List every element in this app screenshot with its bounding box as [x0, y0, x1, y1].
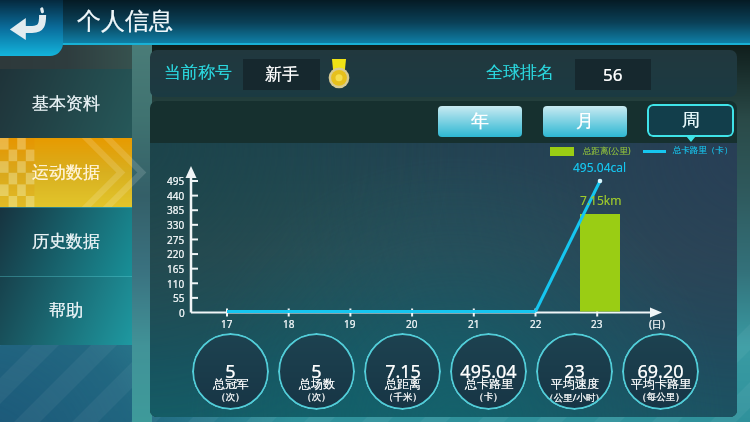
button[interactable]: 69.20 — [622, 333, 699, 410]
staticText: 7.15 — [385, 359, 421, 384]
button[interactable]: 495.04 — [450, 333, 527, 410]
staticText: 330 — [167, 218, 185, 232]
staticText: （次） — [302, 391, 331, 403]
staticText: 总距离 — [385, 376, 421, 391]
button[interactable]: Back — [0, 0, 63, 56]
staticText: 基本资料 — [32, 93, 100, 114]
staticText: 440 — [167, 189, 185, 203]
staticText: 20 — [406, 317, 418, 331]
staticText: 月 — [576, 110, 594, 133]
staticText: 18 — [283, 317, 295, 331]
button[interactable]: 运动数据 — [0, 138, 132, 207]
staticText: 个人信息 — [77, 6, 173, 36]
staticText: 69.20 — [637, 359, 684, 384]
button[interactable]: 5 — [278, 333, 355, 410]
staticText: 全球排名 — [486, 62, 554, 83]
staticText: 495.04 — [460, 359, 517, 384]
button[interactable]: 7.15 — [364, 333, 441, 410]
staticText: 495.04cal — [573, 159, 627, 175]
staticText: 总距离(公里) — [583, 145, 631, 157]
staticText: 运动数据 — [32, 162, 100, 183]
staticText: 56 — [603, 63, 623, 86]
button[interactable]: 5 — [192, 333, 269, 410]
staticText: 110 — [167, 277, 185, 291]
staticText: （公里/小时） — [544, 391, 605, 404]
button[interactable]: 周 — [647, 104, 734, 137]
staticText: 275 — [167, 233, 185, 247]
staticText: 5 — [225, 359, 236, 384]
staticText: 周 — [682, 109, 700, 132]
staticText: 7.15km — [580, 192, 622, 208]
staticText: 55 — [173, 291, 185, 305]
staticText: 17 — [221, 317, 233, 331]
button[interactable]: 历史数据 — [0, 207, 132, 276]
staticText: （次） — [216, 391, 245, 403]
button[interactable]: 月 — [543, 106, 627, 137]
staticText: 385 — [167, 203, 185, 217]
staticText: 22 — [530, 317, 542, 331]
staticText: 23 — [564, 359, 585, 384]
staticText: 0 — [179, 306, 185, 320]
button[interactable]: 年 — [438, 106, 522, 137]
staticText: 220 — [167, 247, 185, 261]
staticText: (日) — [649, 317, 665, 331]
staticText: 21 — [468, 317, 480, 331]
staticText: 总场数 — [299, 376, 335, 391]
staticText: 历史数据 — [32, 231, 100, 252]
button[interactable] — [150, 50, 737, 97]
staticText: 帮助 — [49, 300, 83, 321]
staticText: 新手 — [265, 64, 299, 85]
staticText: 当前称号 — [164, 62, 232, 83]
staticText: 5 — [311, 359, 322, 384]
staticText: （每公里） — [637, 391, 685, 403]
staticText: 总卡路里（卡） — [673, 145, 733, 156]
button[interactable]: 基本资料 — [0, 69, 132, 138]
button[interactable]: 帮助 — [0, 276, 132, 345]
staticText: 23 — [591, 317, 603, 331]
staticText: 平均速度 — [551, 376, 599, 391]
staticText: （卡） — [474, 391, 503, 403]
staticText: 495 — [167, 174, 185, 188]
staticText: 165 — [167, 262, 185, 276]
staticText: 总卡路里 — [465, 376, 513, 391]
button[interactable]: 23 — [536, 333, 613, 410]
staticText: 总冠军 — [213, 376, 249, 391]
staticText: （千米） — [384, 391, 422, 403]
staticText: 年 — [471, 110, 489, 133]
staticText: 平均卡路里 — [631, 376, 691, 391]
staticText: 19 — [344, 317, 356, 331]
